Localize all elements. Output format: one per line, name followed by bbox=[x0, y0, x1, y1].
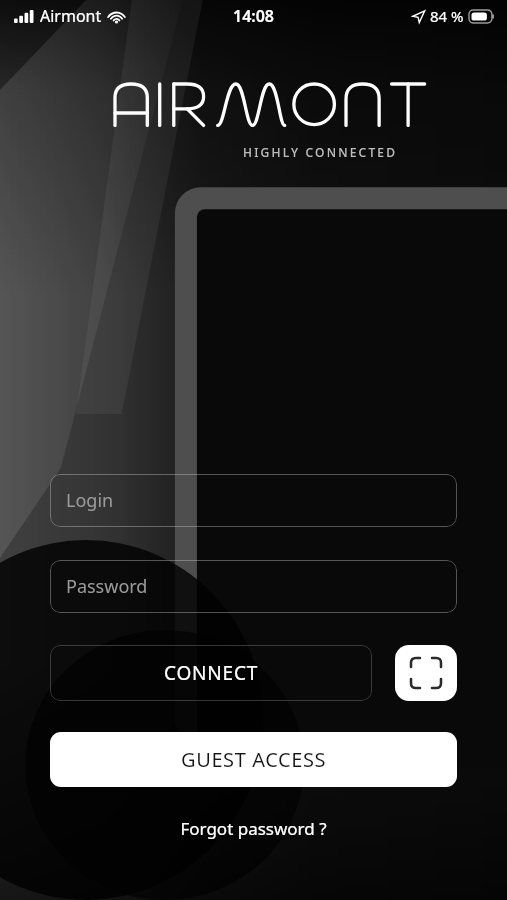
button[interactable]: Password bbox=[50, 560, 457, 613]
staticText: 84 % bbox=[430, 6, 464, 26]
staticText: Login bbox=[66, 488, 114, 513]
button[interactable]: Login bbox=[50, 474, 457, 527]
button[interactable]: CONNECT bbox=[50, 645, 372, 701]
button[interactable]: GUEST ACCESS bbox=[50, 732, 457, 787]
staticText: HIGHLY CONNECTED bbox=[243, 144, 398, 160]
button[interactable]: Forgot password ? bbox=[170, 813, 337, 844]
staticText: 14:08 bbox=[233, 5, 275, 27]
staticText: GUEST ACCESS bbox=[181, 746, 327, 773]
staticText: Password bbox=[66, 574, 148, 599]
staticText: CONNECT bbox=[164, 660, 259, 686]
staticText: Airmont bbox=[40, 5, 102, 27]
staticText: Forgot password ? bbox=[180, 817, 327, 840]
button[interactable]: Scan QR code bbox=[395, 645, 457, 701]
